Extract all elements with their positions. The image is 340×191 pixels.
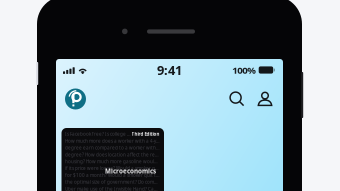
staticText: Third Edition — [131, 131, 159, 137]
staticText: Microeconomics — [105, 167, 156, 175]
button[interactable]: Account — [251, 84, 279, 114]
staticText: Is Facebook free? Is college worth it? — [65, 131, 130, 137]
staticText: housing? How much more gasoline would pe… — [65, 158, 159, 165]
staticText: Uber make use of the Invisible Hand? Can… — [65, 186, 159, 191]
staticText: How much more does a worker with a 4-yea… — [65, 138, 159, 144]
staticText: degree earn compared to a worker with a … — [65, 145, 159, 151]
button[interactable]: Pearson home — [61, 84, 90, 114]
button[interactable]: Microeconomics, Third Edition — [61, 128, 164, 191]
staticText: if its price were lower? Would a smoker … — [65, 165, 159, 171]
staticText: degree? How does location affect the ren… — [65, 152, 159, 158]
staticText: for $100 a month? Would a smoker quit th… — [65, 172, 159, 178]
button[interactable]: Search — [223, 84, 251, 114]
staticText: 100% — [232, 63, 256, 77]
staticText: 9:41 — [157, 61, 182, 79]
staticText: the optimal size of government? Do compa… — [65, 179, 159, 185]
